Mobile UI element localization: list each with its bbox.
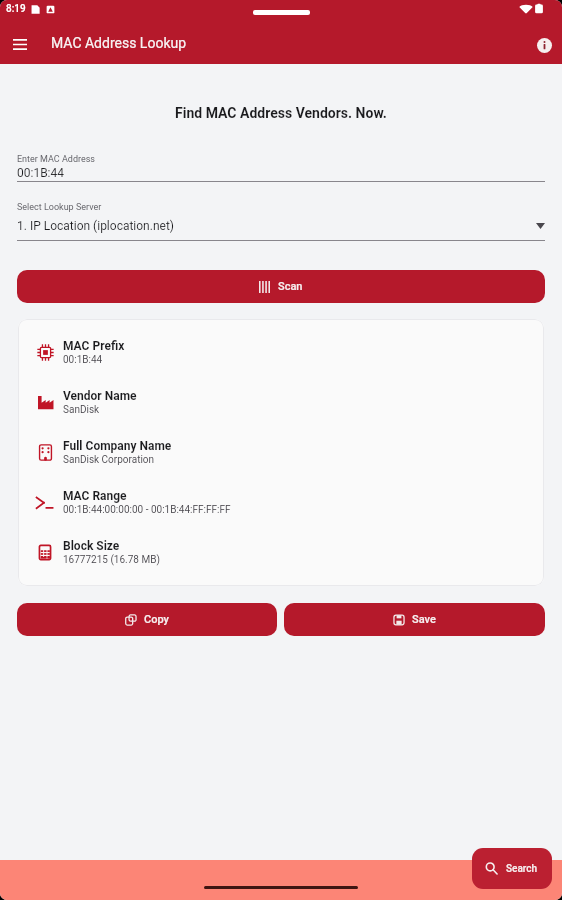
staticText: Scan bbox=[278, 280, 303, 293]
staticText: Enter MAC Address bbox=[17, 154, 95, 165]
staticText: Select Lookup Server bbox=[17, 202, 102, 213]
staticText: Block Size bbox=[63, 539, 120, 553]
staticText: Save bbox=[412, 613, 436, 626]
staticText: Find MAC Address Vendors. Now. bbox=[0, 105, 562, 121]
staticText: 00:1B:44:00:00:00 - 00:1B:44:FF:FF:FF bbox=[63, 504, 231, 516]
staticText: 8:19 bbox=[6, 3, 26, 15]
staticText: 00:1B:44 bbox=[17, 166, 65, 180]
button[interactable]: Search bbox=[472, 848, 552, 889]
staticText: 16777215 (16.78 MB) bbox=[63, 554, 160, 566]
staticText: SanDisk Corporation bbox=[63, 454, 155, 466]
staticText: 00:1B:44 bbox=[63, 354, 103, 366]
staticText: MAC Address Lookup bbox=[51, 35, 187, 51]
button[interactable]: Open navigation menu bbox=[3, 28, 36, 61]
staticText: Full Company Name bbox=[63, 439, 172, 453]
staticText: Search bbox=[506, 863, 538, 875]
staticText: Copy bbox=[144, 613, 169, 626]
button[interactable]: Save bbox=[284, 603, 545, 636]
staticText: Vendor Name bbox=[63, 389, 137, 403]
button[interactable]: Copy bbox=[17, 603, 277, 636]
button[interactable]: About this app bbox=[528, 29, 561, 62]
staticText: 1. IP Location (iplocation.net) bbox=[17, 219, 536, 233]
staticText: SanDisk bbox=[63, 404, 100, 416]
staticText: MAC Prefix bbox=[63, 339, 125, 353]
staticText: MAC Range bbox=[63, 489, 127, 503]
button[interactable]: Scan bbox=[17, 270, 545, 303]
